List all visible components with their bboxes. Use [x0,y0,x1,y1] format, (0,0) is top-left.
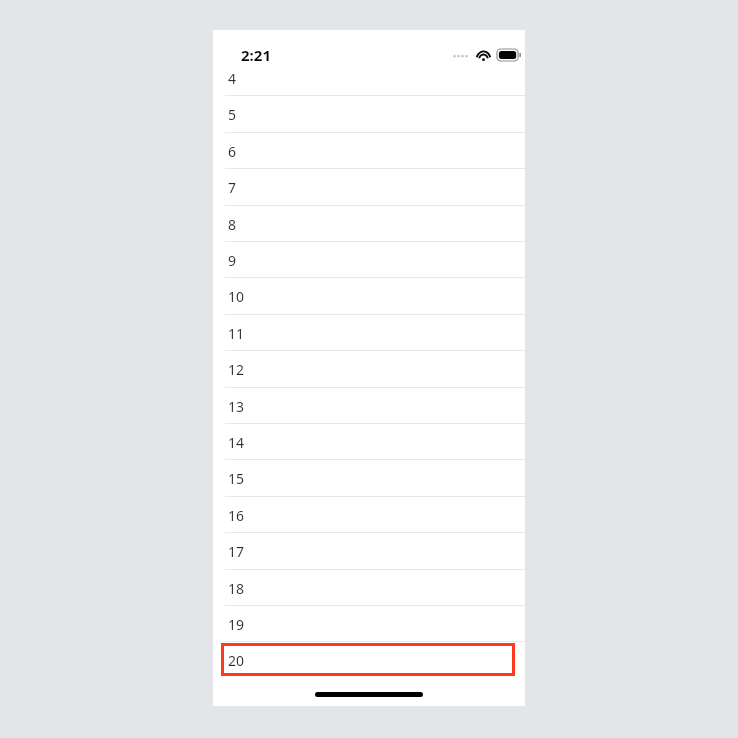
staticText: 8 [228,215,237,234]
button[interactable]: 20 [213,642,525,678]
button[interactable]: 18 [213,570,525,606]
staticText: 14 [228,433,245,452]
staticText: 10 [228,287,245,306]
button[interactable]: 14 [213,424,525,460]
staticText: 4 [228,69,237,88]
button[interactable]: 9 [213,242,525,278]
button[interactable]: 15 [213,460,525,496]
staticText: 19 [228,615,245,634]
button[interactable]: Selected item 20 [221,643,515,676]
button[interactable]: 12 [213,351,525,387]
staticText: 17 [228,542,245,561]
staticText: 13 [228,397,245,416]
staticText: 12 [228,360,245,379]
button[interactable]: 10 [213,278,525,314]
staticText: 16 [228,506,245,525]
button[interactable]: 11 [213,315,525,351]
button[interactable]: 19 [213,606,525,642]
staticText: 2:21 [241,45,271,65]
button[interactable]: 6 [213,133,525,169]
staticText: 5 [228,105,237,124]
button[interactable]: 5 [213,96,525,132]
button[interactable]: 13 [213,388,525,424]
staticText: 20 [228,651,245,670]
staticText: 18 [228,579,245,598]
button[interactable]: 17 [213,533,525,569]
button[interactable]: 7 [213,169,525,205]
button[interactable]: 16 [213,497,525,533]
staticText: 9 [228,251,237,270]
staticText: 11 [228,324,245,343]
staticText: 6 [228,142,237,161]
staticText: 7 [228,178,237,197]
button[interactable]: 4 [213,60,525,96]
button[interactable]: 8 [213,206,525,242]
staticText: 15 [228,469,245,488]
